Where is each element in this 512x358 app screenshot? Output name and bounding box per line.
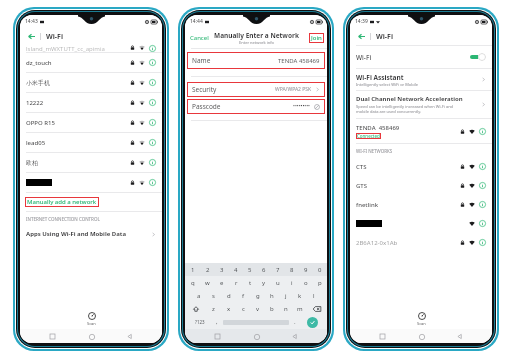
button[interactable]: p (313, 276, 327, 289)
button[interactable]: 9 (299, 263, 313, 276)
button[interactable]: Back (356, 31, 367, 42)
staticText: f (242, 292, 245, 300)
button[interactable]: fnetlink (350, 195, 492, 214)
button[interactable]: Recents (46, 330, 59, 343)
button[interactable]: 8 (285, 263, 299, 276)
button[interactable]: Back (26, 31, 37, 42)
staticText: , (216, 318, 218, 326)
staticText: GTS (356, 182, 368, 190)
button[interactable]: dz_touch (20, 53, 162, 72)
button[interactable]: n (279, 302, 293, 315)
button[interactable]: 3 (215, 263, 229, 276)
button[interactable]: 2B6A12-0x1Ab (350, 233, 492, 252)
staticText: d (227, 292, 231, 300)
button[interactable]: Manually add a network (20, 193, 162, 211)
button[interactable]: j (279, 289, 293, 302)
button[interactable]: d (221, 289, 236, 302)
button[interactable]: t (243, 276, 257, 289)
staticText: a (197, 292, 201, 300)
button[interactable]: Wi-Fi (350, 46, 492, 68)
button[interactable]: Back (288, 330, 301, 343)
button[interactable]: Home (85, 330, 98, 343)
button[interactable]: r (229, 276, 243, 289)
button[interactable]: 12222 (20, 93, 162, 112)
button[interactable]: Home (250, 330, 263, 343)
button[interactable]: h (265, 289, 279, 302)
button[interactable]: Passcode (187, 99, 325, 114)
button[interactable]: CTS (350, 157, 492, 176)
button[interactable]: q (185, 276, 200, 289)
button[interactable]: Security (187, 82, 325, 97)
button[interactable]: 0 (313, 263, 327, 276)
button[interactable] (20, 173, 162, 192)
button[interactable]: Home (415, 330, 428, 343)
button[interactable] (350, 214, 492, 233)
button[interactable]: 欧柏 (20, 153, 162, 172)
staticText: o (304, 279, 308, 287)
button[interactable]: l (307, 289, 321, 302)
staticText: lead05 (26, 139, 46, 147)
button[interactable]: Name (187, 52, 325, 69)
button[interactable]: Dual Channel Network Acceleration (350, 91, 492, 118)
button[interactable]: z (206, 302, 221, 315)
button[interactable]: Recents (376, 330, 389, 343)
button[interactable]: b (265, 302, 279, 315)
button[interactable]: 5 (243, 263, 257, 276)
staticText: k (298, 292, 302, 300)
staticText: Scan (417, 321, 426, 326)
button[interactable]: Shift (185, 302, 206, 315)
button[interactable]: 2 (200, 263, 215, 276)
button[interactable]: x (221, 302, 236, 315)
staticText: 12222 (26, 99, 44, 107)
staticText: CTS (356, 163, 367, 171)
button[interactable]: Wi-Fi Assistant (350, 69, 492, 90)
button[interactable]: u (271, 276, 285, 289)
button[interactable]: Back (453, 330, 466, 343)
button[interactable]: w (200, 276, 215, 289)
button[interactable]: c (236, 302, 251, 315)
staticText: Apps Using Wi-Fi and Mobile Data (26, 230, 151, 238)
staticText: Scan (87, 321, 96, 326)
button[interactable]: Scan (350, 308, 492, 329)
button[interactable]: f (236, 289, 251, 302)
button[interactable]: Join (309, 33, 324, 43)
button[interactable]: e (215, 276, 229, 289)
button[interactable]: TENDA 458469 (350, 119, 492, 143)
button[interactable]: Show passcode (314, 104, 320, 110)
button[interactable]: OPPO R15 (20, 113, 162, 132)
button[interactable]: GTS (350, 176, 492, 195)
button[interactable]: i (285, 276, 299, 289)
button[interactable]: Apps Using Wi-Fi and Mobile Data (20, 226, 162, 242)
button[interactable]: Scan (20, 308, 162, 329)
button[interactable]: ?123 (188, 315, 211, 329)
staticText: 9 (304, 266, 308, 274)
button[interactable]: Cancel (185, 32, 211, 44)
button[interactable]: s (206, 289, 221, 302)
button[interactable]: 小米手机 (20, 73, 162, 92)
button[interactable]: , (211, 315, 223, 329)
button[interactable]: g (251, 289, 265, 302)
staticText: 5 (248, 266, 252, 274)
button[interactable]: 7 (271, 263, 285, 276)
button[interactable]: lead05 (20, 133, 162, 152)
button[interactable]: m (293, 302, 307, 315)
button[interactable]: Back (123, 330, 136, 343)
button[interactable]: o (299, 276, 313, 289)
button[interactable]: Recents (211, 330, 224, 343)
button[interactable]: 6 (257, 263, 271, 276)
button[interactable]: k (293, 289, 307, 302)
staticText: w (205, 279, 210, 287)
staticText: i (291, 279, 293, 287)
button[interactable]: Backspace (307, 302, 327, 315)
staticText: b (270, 305, 274, 313)
button[interactable]: y (257, 276, 271, 289)
staticText: p (318, 279, 322, 287)
button[interactable]: . (289, 315, 301, 329)
button[interactable]: v (251, 302, 265, 315)
button[interactable]: 1 (185, 263, 200, 276)
button[interactable]: 4 (229, 263, 243, 276)
staticText: e (220, 279, 224, 287)
button[interactable]: Enter (301, 315, 324, 329)
button[interactable]: a (191, 289, 206, 302)
